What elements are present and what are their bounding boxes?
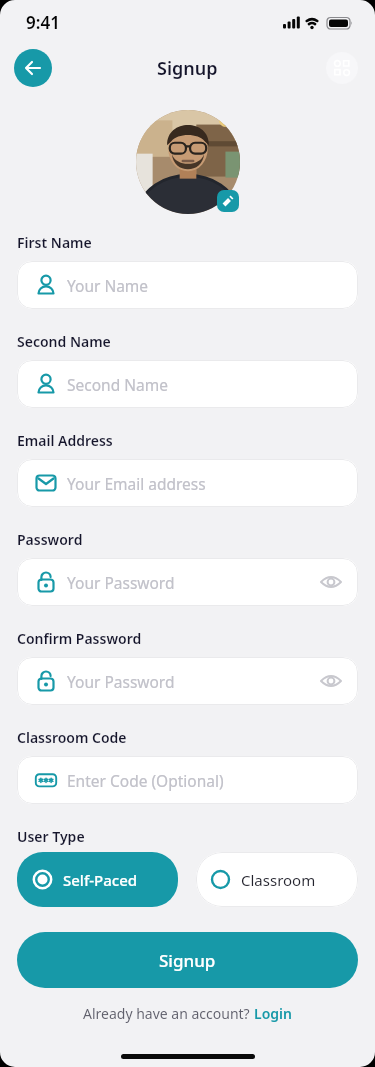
button[interactable]: Your Email address: [17, 459, 358, 507]
staticText: Second Name: [67, 374, 168, 395]
button[interactable]: Your Name: [17, 261, 358, 309]
staticText: Your Password: [67, 572, 175, 593]
button[interactable]: Classroom: [196, 852, 358, 907]
staticText: 9:41: [26, 11, 60, 34]
staticText: Password: [17, 530, 83, 549]
button[interactable]: [326, 52, 358, 84]
staticText: Email Address: [17, 431, 113, 450]
button[interactable]: Enter Code (Optional): [17, 756, 358, 804]
staticText: Your Email address: [67, 473, 206, 494]
staticText: Classroom Code: [17, 728, 127, 747]
button[interactable]: Signup: [17, 932, 358, 988]
staticText: Your Name: [67, 275, 149, 296]
button[interactable]: Your Password: [17, 558, 358, 606]
staticText: Your Password: [67, 671, 175, 692]
button[interactable]: Your Password: [17, 657, 358, 705]
staticText: Self-Paced: [63, 870, 138, 890]
button[interactable]: Self-Paced: [17, 852, 178, 907]
button[interactable]: [217, 190, 239, 212]
staticText: Login: [254, 1004, 292, 1023]
staticText: Confirm Password: [17, 629, 142, 648]
staticText: Already have an account?: [83, 1004, 254, 1023]
staticText: Signup: [157, 56, 218, 81]
button[interactable]: Login: [254, 1004, 292, 1023]
staticText: First Name: [17, 233, 92, 252]
staticText: Classroom: [241, 870, 316, 890]
staticText: User Type: [17, 827, 85, 846]
button[interactable]: [14, 49, 52, 87]
staticText: Enter Code (Optional): [67, 770, 224, 791]
staticText: Second Name: [17, 332, 111, 351]
staticText: Signup: [159, 949, 216, 972]
button[interactable]: Second Name: [17, 360, 358, 408]
